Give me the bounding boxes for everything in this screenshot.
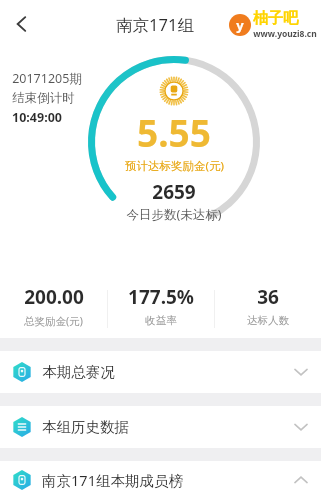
staticText: 柚子吧 bbox=[253, 9, 298, 28]
staticText: 10:49:00 bbox=[12, 109, 62, 126]
button[interactable]: 177.5% bbox=[108, 284, 214, 327]
staticText: 达标人数 bbox=[247, 314, 289, 327]
staticText: 今日步数(未达标) bbox=[126, 206, 222, 223]
staticText: 20171205期 bbox=[12, 70, 82, 87]
staticText: 结束倒计时 bbox=[12, 90, 75, 106]
staticText: y bbox=[236, 16, 244, 34]
staticText: 本期总赛况 bbox=[42, 363, 115, 381]
staticText: 南京171组 bbox=[116, 13, 194, 36]
staticText: 收益率 bbox=[145, 314, 177, 327]
staticText: www.youzi8.cn bbox=[253, 28, 317, 40]
staticText: 5.55 bbox=[137, 107, 211, 157]
button[interactable]: Back bbox=[0, 2, 44, 46]
button[interactable]: 200.00 bbox=[0, 284, 107, 328]
staticText: 36 bbox=[257, 284, 279, 310]
staticText: 2659 bbox=[152, 179, 196, 205]
button[interactable]: 南京171组本期成员榜 bbox=[0, 461, 321, 498]
staticText: 预计达标奖励金(元) bbox=[125, 158, 224, 174]
staticText: 总奖励金(元) bbox=[24, 314, 83, 328]
staticText: 南京171组本期成员榜 bbox=[42, 470, 183, 490]
button[interactable]: 36 bbox=[215, 284, 321, 327]
staticText: 177.5% bbox=[128, 284, 194, 310]
staticText: 200.00 bbox=[24, 284, 84, 310]
button[interactable]: 本组历史数据 bbox=[0, 406, 321, 448]
button[interactable]: 本期总赛况 bbox=[0, 351, 321, 393]
staticText: 本组历史数据 bbox=[42, 418, 129, 436]
